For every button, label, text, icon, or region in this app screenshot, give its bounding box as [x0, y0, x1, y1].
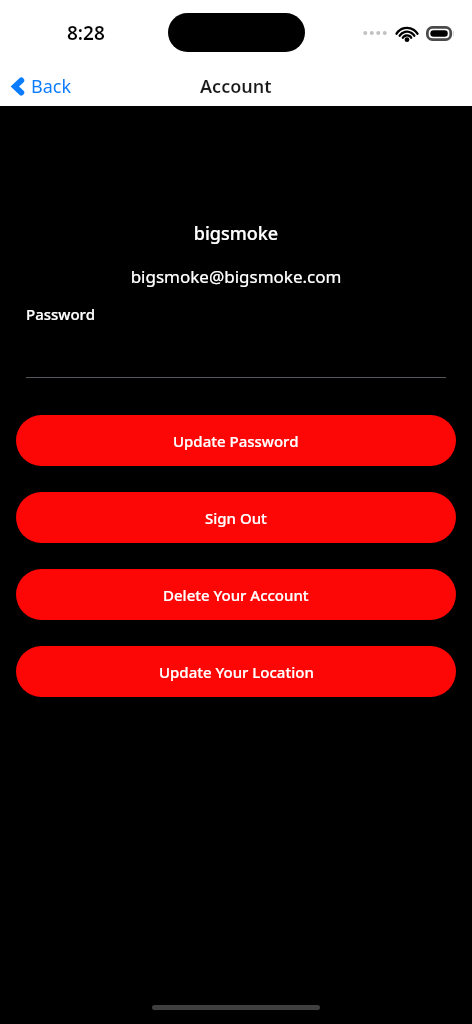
staticText: Back: [31, 74, 72, 99]
staticText: Account: [200, 74, 272, 99]
button[interactable]: Delete Your Account: [16, 569, 456, 620]
staticText: bigsmoke@bigsmoke.com: [0, 265, 472, 288]
other: Back: [12, 77, 24, 96]
staticText: bigsmoke: [0, 221, 472, 246]
button[interactable]: Sign Out: [16, 492, 456, 543]
button[interactable]: Update Password: [16, 415, 456, 466]
staticText: Update Password: [173, 431, 299, 451]
button[interactable]: Back: [0, 67, 86, 106]
staticText: Delete Your Account: [163, 585, 309, 605]
staticText: 8:28: [67, 20, 105, 46]
button[interactable]: Update Your Location: [16, 646, 456, 697]
staticText: Update Your Location: [159, 662, 314, 682]
staticText: Password: [26, 304, 95, 324]
staticText: Sign Out: [205, 508, 267, 528]
